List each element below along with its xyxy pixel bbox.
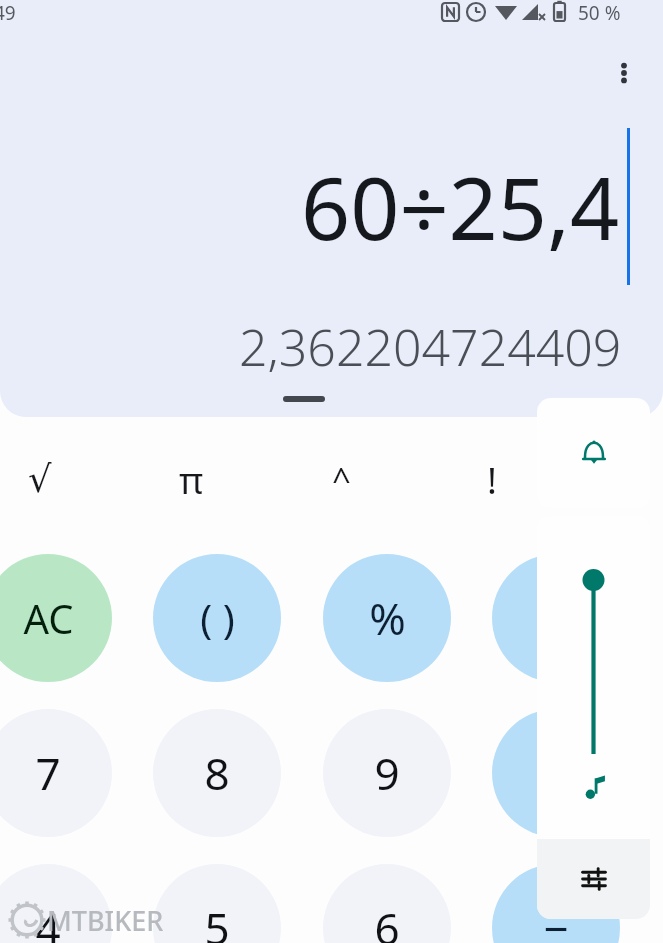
button[interactable]: 7 <box>0 709 112 837</box>
staticText: 7 <box>35 743 61 803</box>
button[interactable]: ÷ <box>492 554 620 682</box>
button[interactable]: 6 <box>323 864 451 943</box>
staticText: MTBIKER <box>47 902 164 939</box>
button[interactable]: % <box>323 554 451 682</box>
button[interactable]: 4 <box>0 864 112 943</box>
staticText: ! <box>487 454 497 504</box>
button[interactable]: ( ) <box>153 554 281 682</box>
staticText: % <box>369 588 406 648</box>
staticText: 60÷25,4 <box>301 148 620 265</box>
staticText: 9 <box>374 743 400 803</box>
button[interactable]: Volume settings <box>537 839 650 919</box>
button[interactable]: Ringer mode <box>537 398 650 508</box>
button[interactable]: 5 <box>153 864 281 943</box>
staticText: ( ) <box>200 591 235 645</box>
button[interactable]: ! <box>456 448 528 510</box>
staticText: 6 <box>374 898 400 943</box>
staticText: − <box>543 898 569 943</box>
staticText: 5 <box>204 898 230 943</box>
button[interactable]: π <box>155 448 227 510</box>
staticText: 4 <box>35 898 61 943</box>
staticText: ^ <box>332 457 351 502</box>
staticText: 8 <box>204 743 230 803</box>
button[interactable]: More options <box>600 49 648 97</box>
staticText: AC <box>23 591 74 645</box>
button[interactable]: 8 <box>153 709 281 837</box>
button[interactable]: Media output <box>565 758 622 816</box>
staticText: 2,362204724409 <box>239 313 622 381</box>
staticText: √ <box>28 458 52 501</box>
staticText: 49 <box>0 0 16 26</box>
button[interactable]: Media volume <box>565 556 622 766</box>
button[interactable]: ^ <box>305 448 377 510</box>
button[interactable]: × <box>492 709 620 837</box>
button[interactable]: √ <box>4 448 76 510</box>
staticText: π <box>179 454 204 504</box>
button[interactable]: 9 <box>323 709 451 837</box>
button[interactable]: AC <box>0 554 112 682</box>
staticText: 50 % <box>578 0 621 26</box>
button[interactable]: − <box>492 864 620 943</box>
button[interactable]: Expand display <box>283 396 325 402</box>
